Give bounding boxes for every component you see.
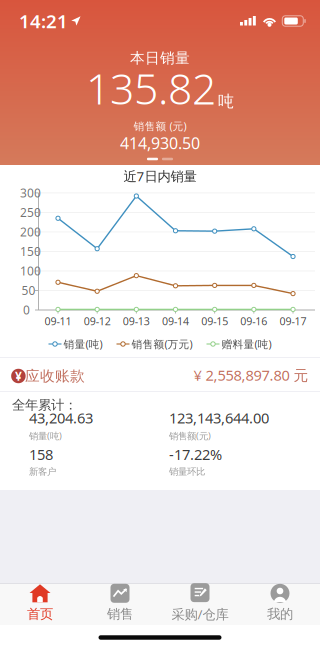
staticText: 销量环比 <box>169 466 205 477</box>
staticText: ¥ <box>15 368 22 384</box>
staticText: 我的 <box>267 606 293 622</box>
staticText: 销量(吨) <box>63 337 102 351</box>
staticText: 135.82 <box>86 60 216 116</box>
button[interactable]: 采购/仓库 <box>160 584 240 625</box>
staticText: 近7日内销量 <box>123 167 196 185</box>
staticText: 158 <box>29 444 53 464</box>
staticText: 123,143,644.00 <box>169 408 269 428</box>
staticText: 应收账款 <box>25 367 85 385</box>
staticText: ¥ 2,558,897.80 元 <box>193 365 308 385</box>
staticText: 本日销量 <box>130 49 190 67</box>
staticText: 300 <box>20 185 41 201</box>
staticText: 采购/仓库 <box>171 605 228 623</box>
staticText: 09-15 <box>201 314 228 328</box>
staticText: 09-11 <box>44 314 71 328</box>
staticText: 0 <box>23 302 30 318</box>
staticText: 09-12 <box>84 314 111 328</box>
staticText: 09-14 <box>162 314 189 328</box>
staticText: 全年累计： <box>12 397 77 413</box>
staticText: 09-13 <box>123 314 150 328</box>
staticText: 首页 <box>27 606 53 622</box>
staticText: 销售额 (元) <box>133 119 186 133</box>
button[interactable]: 销售 <box>80 584 160 625</box>
staticText: 吨 <box>218 92 234 111</box>
staticText: 09-17 <box>279 314 306 328</box>
staticText: 43,204.63 <box>29 408 93 428</box>
staticText: 100 <box>20 263 41 279</box>
staticText: -17.22% <box>169 444 222 464</box>
staticText: 150 <box>20 243 41 259</box>
staticText: 销售额(元) <box>169 429 211 442</box>
staticText: 销量(吨) <box>29 429 62 442</box>
staticText: 414,930.50 <box>120 132 200 154</box>
button[interactable]: 我的 <box>240 584 320 625</box>
staticText: 250 <box>20 204 41 220</box>
staticText: 销售 <box>107 606 133 622</box>
button[interactable]: 首页 <box>0 584 80 625</box>
staticText: 09-16 <box>240 314 267 328</box>
staticText: 赠料量(吨) <box>221 337 271 351</box>
staticText: 销售额(万元) <box>131 337 192 351</box>
staticText: 200 <box>20 224 41 240</box>
staticText: 14:21 <box>19 9 68 33</box>
button[interactable]: ¥ <box>0 358 320 391</box>
staticText: 新客户 <box>29 466 56 477</box>
staticText: 50 <box>21 282 35 298</box>
